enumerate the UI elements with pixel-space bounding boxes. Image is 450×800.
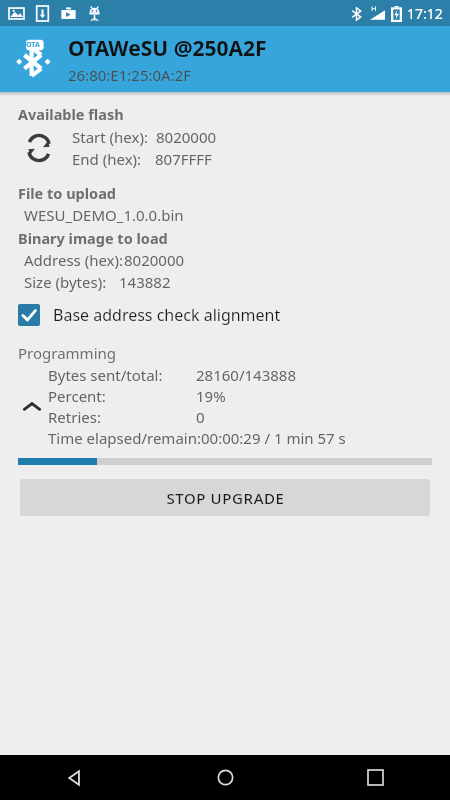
staticText: Binary image to load	[18, 228, 168, 248]
staticText: File to upload	[18, 183, 116, 203]
staticText: 0	[196, 407, 205, 427]
staticText: 807FFFF	[155, 149, 212, 169]
button[interactable]: Refresh flash info	[22, 131, 56, 165]
staticText: 19%	[196, 386, 226, 406]
staticText: Time elapsed/remain:	[48, 428, 201, 448]
staticText: Base address check alignment	[53, 304, 281, 326]
staticText: 143882	[119, 272, 171, 292]
other: OTA Bluetooth	[14, 39, 54, 79]
staticText: Bytes sent/total:	[48, 365, 196, 385]
button[interactable]: Home	[150, 755, 300, 800]
staticText: 28160/143888	[196, 365, 296, 385]
staticText: Size (bytes):	[24, 272, 107, 292]
staticText: STOP UPGRADE	[166, 488, 285, 508]
staticText: Address (hex):	[24, 250, 124, 270]
staticText: 26:80:E1:25:0A:2F	[68, 65, 192, 85]
button[interactable]: Collapse programming details	[20, 395, 44, 419]
staticText: 8020000	[124, 250, 185, 270]
staticText: Percent:	[48, 386, 196, 406]
staticText: Retries:	[48, 407, 196, 427]
button[interactable]: Base address check alignment	[0, 300, 450, 330]
staticText: Available flash	[18, 104, 124, 124]
staticText: OTA	[26, 40, 40, 50]
staticText: OTAWeSU @250A2F	[68, 34, 267, 63]
staticText: End (hex):	[72, 149, 142, 169]
staticText: Programming	[18, 343, 116, 363]
button[interactable]: STOP UPGRADE	[20, 479, 430, 516]
staticText: WESU_DEMO_1.0.0.bin	[24, 205, 184, 225]
staticText: Start (hex):	[72, 127, 148, 147]
staticText: 00:00:29 / 1 min 57 s	[201, 428, 346, 448]
staticText: 17:12	[407, 4, 443, 23]
button[interactable]: Recents	[300, 755, 450, 800]
staticText: 8020000	[156, 127, 217, 147]
button[interactable]: Back	[0, 755, 150, 800]
